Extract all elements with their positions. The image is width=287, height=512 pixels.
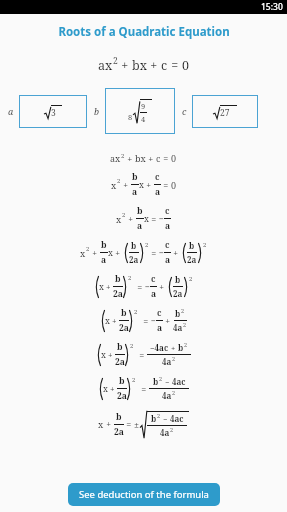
staticText: 3	[51, 107, 56, 119]
staticText: c	[157, 307, 162, 319]
staticText: ax	[98, 57, 113, 74]
staticText: +	[121, 179, 131, 191]
staticText: a	[101, 254, 107, 266]
staticText: −	[159, 213, 164, 225]
staticText: x	[105, 315, 110, 327]
staticText: +	[147, 57, 161, 74]
staticText: 4ac	[172, 376, 186, 387]
staticText: b	[178, 342, 184, 353]
staticText: =	[161, 152, 171, 164]
staticText: +	[113, 247, 123, 259]
staticText: c	[182, 105, 187, 117]
staticText: 2	[159, 375, 163, 382]
staticText: x	[144, 213, 149, 225]
staticText: a	[165, 220, 171, 232]
staticText: +	[106, 349, 115, 360]
staticText: x	[139, 179, 144, 191]
staticText: x	[116, 213, 122, 225]
staticText: 8	[128, 112, 133, 122]
staticText: 2	[145, 241, 149, 249]
staticText: 4a	[162, 356, 172, 367]
staticText: =	[141, 315, 151, 327]
staticText: x	[111, 179, 117, 191]
staticText: 2	[117, 177, 121, 185]
staticText: +	[104, 281, 113, 292]
staticText: a	[157, 322, 163, 334]
staticText: c	[151, 273, 156, 285]
staticText: +	[108, 383, 117, 394]
staticText: a	[155, 186, 161, 198]
staticText: x	[108, 247, 113, 259]
staticText: −	[161, 414, 170, 424]
staticText: b	[121, 307, 127, 319]
staticText: bx	[135, 152, 146, 164]
staticText: 0	[171, 179, 177, 191]
staticText: 4a	[160, 427, 170, 438]
staticText: b	[116, 411, 122, 423]
staticText: −	[145, 281, 150, 293]
staticText: =	[135, 281, 145, 293]
staticText: x	[103, 383, 108, 395]
staticText: Roots of a Quadratic Equation	[58, 24, 230, 40]
staticText: −	[159, 247, 164, 259]
staticText: x	[101, 349, 106, 361]
staticText: =	[124, 418, 134, 430]
staticText: 2	[181, 307, 185, 314]
staticText: 2a	[114, 426, 124, 438]
staticText: b	[153, 376, 159, 387]
staticText: 4ac	[170, 413, 184, 424]
staticText: 2	[86, 245, 90, 253]
staticText: b	[117, 341, 123, 353]
staticText: c	[156, 152, 161, 164]
staticText: 2a	[115, 356, 125, 368]
staticText: b	[94, 105, 100, 117]
staticText: 15:30	[261, 1, 283, 13]
staticText: +	[144, 179, 154, 191]
staticText: a	[8, 105, 14, 117]
staticText: 4	[141, 114, 146, 124]
staticText: b	[151, 413, 157, 424]
staticText: +	[171, 247, 181, 259]
staticText: +	[157, 281, 167, 293]
staticText: c	[165, 205, 170, 217]
staticText: =	[149, 247, 159, 259]
staticText: 2	[128, 274, 132, 282]
staticText: −4ac	[150, 342, 169, 353]
staticText: 4a	[162, 390, 172, 401]
staticText: 2	[132, 376, 136, 384]
staticText: x	[80, 247, 86, 259]
staticText: =	[149, 213, 159, 225]
staticText: 9	[141, 101, 146, 111]
staticText: bx	[132, 57, 147, 74]
staticText: See deduction of the formula	[79, 488, 209, 501]
staticText: +	[125, 152, 135, 164]
staticText: +	[169, 343, 178, 353]
staticText: 2	[130, 342, 134, 350]
staticText: −	[163, 377, 172, 387]
staticText: c	[165, 239, 170, 251]
button[interactable]: 27	[192, 95, 258, 128]
button[interactable]: 3	[19, 95, 87, 128]
staticText: x	[99, 281, 104, 293]
staticText: 2	[189, 275, 193, 283]
staticText: b	[189, 240, 195, 251]
staticText: a	[151, 288, 157, 300]
staticText: 2	[203, 241, 207, 249]
staticText: 2	[113, 55, 118, 67]
staticText: a	[132, 186, 138, 198]
staticText: b	[175, 308, 181, 319]
staticText: 2	[172, 389, 176, 396]
staticText: c	[161, 57, 168, 74]
button[interactable]: See deduction of the formula	[68, 483, 220, 506]
staticText: +	[126, 213, 136, 225]
staticText: 0	[182, 57, 189, 74]
button[interactable]: 8	[105, 88, 175, 134]
staticText: 2	[121, 151, 125, 159]
staticText: ax	[110, 152, 121, 164]
staticText: a	[165, 254, 171, 266]
staticText: 2	[170, 426, 174, 433]
staticText: =	[139, 383, 149, 395]
staticText: 2	[122, 211, 126, 219]
staticText: +	[146, 152, 156, 164]
staticText: b	[131, 240, 137, 251]
